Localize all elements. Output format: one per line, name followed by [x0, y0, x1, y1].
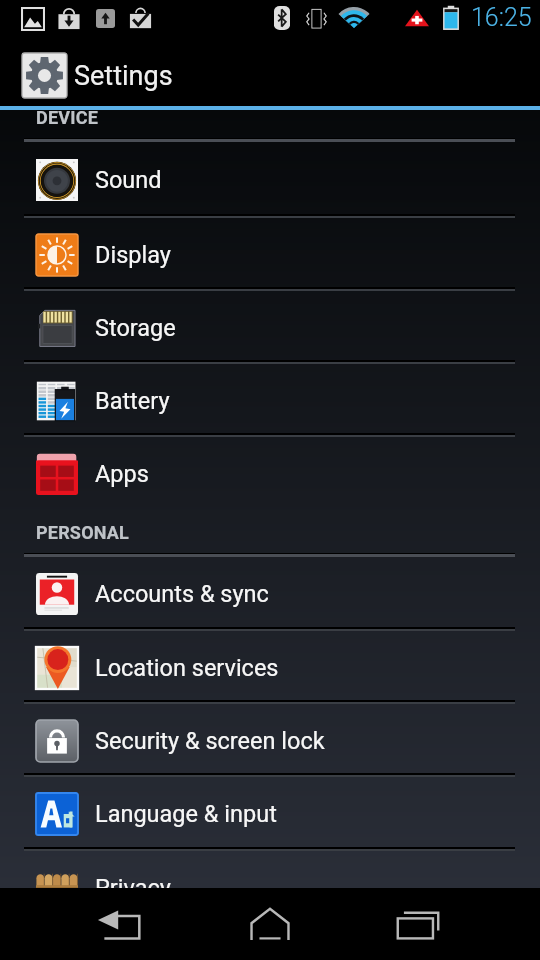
button[interactable]: Apps [0, 437, 540, 510]
staticText: Settings [74, 60, 173, 92]
button[interactable]: Location services [0, 631, 540, 704]
button[interactable]: Recent apps [358, 888, 478, 960]
button[interactable]: Security & screen lock [0, 704, 540, 777]
button[interactable]: Home [210, 888, 330, 960]
staticText: DEVICE [36, 110, 98, 128]
button[interactable]: Sound [0, 142, 540, 218]
button[interactable]: Battery [0, 364, 540, 437]
button[interactable]: Language & input [0, 777, 540, 851]
button[interactable]: Back [60, 888, 180, 960]
staticText: Privacy [95, 874, 171, 888]
button[interactable]: Privacy [0, 851, 540, 888]
staticText: Location services [95, 654, 279, 682]
staticText: Display [95, 241, 171, 269]
staticText: PERSONAL [36, 522, 130, 543]
staticText: 16:25 [471, 3, 532, 32]
staticText: Accounts & sync [95, 580, 269, 608]
staticText: Security & screen lock [95, 727, 325, 755]
staticText: Apps [95, 460, 149, 488]
staticText: Language & input [95, 800, 277, 828]
button[interactable]: Display [0, 218, 540, 291]
staticText: Battery [95, 387, 170, 415]
staticText: Sound [95, 166, 162, 194]
staticText: Storage [95, 314, 176, 342]
button[interactable]: Accounts & sync [0, 557, 540, 631]
button[interactable]: Storage [0, 291, 540, 364]
